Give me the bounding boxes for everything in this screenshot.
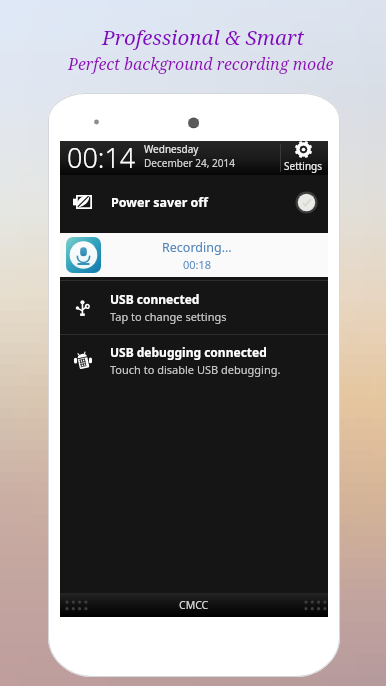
staticText: 00:18 bbox=[183, 257, 212, 272]
button[interactable]: Settings bbox=[281, 142, 326, 174]
staticText: Perfect background recording mode bbox=[68, 53, 334, 75]
button[interactable]: Power saver toggle bbox=[295, 191, 318, 214]
staticText: December 24, 2014 bbox=[144, 156, 235, 170]
staticText: Wednesday bbox=[144, 142, 199, 156]
button[interactable]: USB connected bbox=[60, 281, 328, 334]
staticText: Touch to disable USB debugging. bbox=[110, 362, 281, 377]
staticText: Professional & Smart bbox=[102, 23, 305, 51]
staticText: CMCC bbox=[179, 598, 209, 612]
button[interactable]: Power saver off bbox=[60, 175, 328, 229]
button[interactable]: Recording... bbox=[60, 233, 328, 277]
staticText: Power saver off bbox=[111, 194, 208, 211]
staticText: Recording... bbox=[162, 239, 232, 256]
staticText: Tap to change settings bbox=[110, 309, 227, 324]
staticText: Settings bbox=[284, 159, 323, 173]
staticText: USB connected bbox=[110, 291, 200, 307]
staticText: USB debugging connected bbox=[110, 344, 267, 360]
staticText: 00:14 bbox=[67, 139, 136, 173]
button[interactable]: USB debugging connected bbox=[60, 335, 328, 386]
